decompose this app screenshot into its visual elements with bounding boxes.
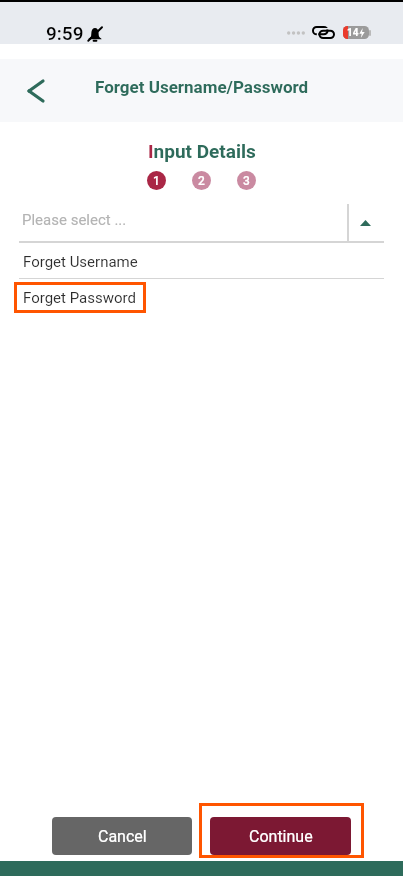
staticText: Please select ... [22, 211, 127, 229]
staticText: 3 [243, 174, 250, 188]
staticText: 14 [347, 27, 359, 39]
button[interactable]: 2 [192, 171, 211, 190]
staticText: Cancel [98, 827, 147, 846]
button[interactable]: Collapse dropdown [351, 204, 379, 241]
button[interactable]: Forget Password [14, 282, 146, 313]
staticText: Input Details [148, 140, 256, 162]
button[interactable]: Back [19, 74, 53, 108]
staticText: 9:59 [46, 22, 84, 44]
staticText: Forget Username [23, 253, 138, 271]
staticText: 1 [153, 174, 160, 188]
staticText: Forget Password [23, 289, 136, 307]
staticText: 2 [198, 174, 205, 188]
button[interactable]: Continue [210, 817, 351, 855]
staticText: Forget Username/Password [95, 77, 309, 97]
button[interactable]: Please select ... [0, 200, 403, 244]
button[interactable]: Cancel [52, 817, 192, 855]
button[interactable]: 1 [147, 171, 166, 190]
staticText: Continue [249, 827, 313, 846]
button[interactable]: 3 [237, 171, 256, 190]
button[interactable]: Forget Username [0, 244, 403, 279]
